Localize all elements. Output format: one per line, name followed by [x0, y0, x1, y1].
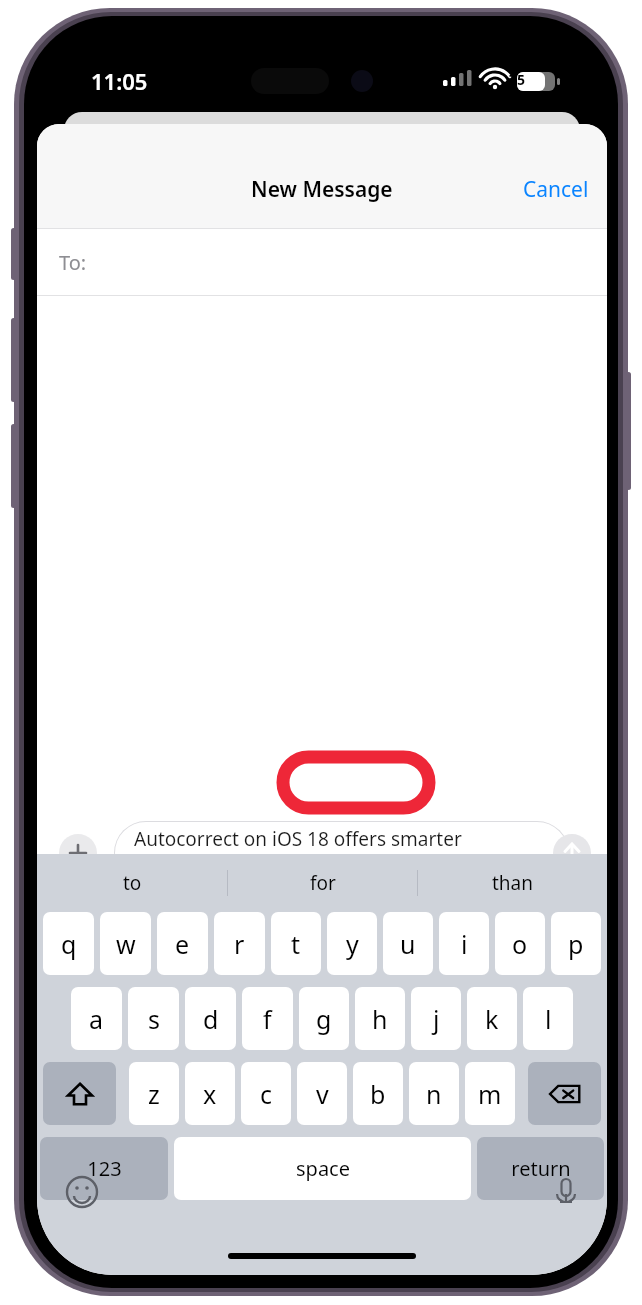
- button[interactable]: for: [228, 854, 417, 912]
- staticText: g: [316, 1002, 332, 1036]
- staticText: w: [116, 927, 136, 961]
- button[interactable]: f: [242, 987, 293, 1050]
- button[interactable]: t: [271, 912, 321, 975]
- button[interactable]: e: [157, 912, 208, 975]
- button[interactable]: m: [465, 1062, 515, 1125]
- staticText: 123: [87, 1155, 122, 1182]
- staticText: Autocorrect on iOS 18 offers smarter: [134, 826, 462, 852]
- button[interactable]: Shift: [43, 1062, 116, 1125]
- button[interactable]: 123: [40, 1137, 168, 1200]
- button[interactable]: Backspace: [528, 1062, 601, 1125]
- button[interactable]: d: [185, 987, 236, 1050]
- staticText: than: [492, 870, 534, 896]
- staticText: a: [89, 1002, 104, 1036]
- staticText: Cancel: [523, 175, 589, 204]
- button[interactable]: o: [495, 912, 545, 975]
- staticText: i: [461, 927, 468, 961]
- staticText: f: [263, 1002, 272, 1036]
- staticText: To:: [59, 249, 87, 276]
- button[interactable]: To:: [37, 229, 607, 295]
- staticText: j: [433, 1002, 440, 1036]
- staticText: m: [478, 1077, 502, 1111]
- staticText: s: [148, 1002, 160, 1036]
- button[interactable]: z: [129, 1062, 179, 1125]
- button[interactable]: p: [551, 912, 601, 975]
- staticText: return: [511, 1155, 571, 1182]
- staticText: 11:05: [91, 66, 148, 96]
- staticText: to: [123, 870, 142, 896]
- button[interactable]: s: [128, 987, 179, 1050]
- staticText: y: [346, 927, 359, 961]
- staticText: 75: [509, 70, 526, 89]
- staticText: z: [148, 1077, 160, 1111]
- button[interactable]: Add attachment: [59, 834, 97, 872]
- staticText: suggestions and: [134, 855, 287, 881]
- button[interactable]: r: [214, 912, 265, 975]
- button[interactable]: Emoji: [65, 1175, 99, 1209]
- button[interactable]: a: [71, 987, 122, 1050]
- button[interactable]: k: [467, 987, 517, 1050]
- staticText: e: [175, 927, 190, 961]
- staticText: l: [545, 1002, 552, 1036]
- staticText: k: [485, 1002, 499, 1036]
- staticText: o: [512, 927, 528, 961]
- staticText: n: [426, 1077, 442, 1111]
- button[interactable]: j: [411, 987, 461, 1050]
- button[interactable]: to: [37, 854, 227, 912]
- button[interactable]: n: [409, 1062, 459, 1125]
- button[interactable]: w: [100, 912, 151, 975]
- button[interactable]: x: [185, 1062, 235, 1125]
- button[interactable]: i: [439, 912, 489, 975]
- staticText: for: [310, 870, 336, 896]
- staticText: d: [203, 1002, 219, 1036]
- button[interactable]: space: [174, 1137, 471, 1200]
- staticText: x: [203, 1077, 217, 1111]
- button[interactable]: c: [241, 1062, 291, 1125]
- staticText: v: [316, 1077, 329, 1111]
- button[interactable]: Autocorrect on iOS 18 offers smarter: [114, 821, 569, 885]
- staticText: space: [296, 1155, 350, 1182]
- staticText: t: [291, 927, 301, 961]
- button[interactable]: q: [43, 912, 94, 975]
- button[interactable]: y: [327, 912, 377, 975]
- staticText: New Message: [251, 175, 393, 204]
- button[interactable]: g: [299, 987, 349, 1050]
- staticText: r: [234, 927, 245, 961]
- staticText: q: [61, 927, 77, 961]
- button[interactable]: v: [297, 1062, 347, 1125]
- staticText: corrections: [287, 855, 387, 881]
- button[interactable]: h: [355, 987, 405, 1050]
- staticText: p: [568, 927, 584, 961]
- staticText: h: [372, 1002, 388, 1036]
- button[interactable]: b: [353, 1062, 403, 1125]
- button[interactable]: l: [523, 987, 573, 1050]
- button[interactable]: Send: [553, 834, 591, 872]
- button[interactable]: than: [418, 854, 607, 912]
- button[interactable]: u: [383, 912, 433, 975]
- staticText: c: [260, 1077, 273, 1111]
- staticText: u: [400, 927, 416, 961]
- staticText: b: [370, 1077, 386, 1111]
- button[interactable]: Cancel: [505, 165, 607, 214]
- button[interactable]: Dictation: [549, 1175, 583, 1209]
- button[interactable]: return: [477, 1137, 604, 1200]
